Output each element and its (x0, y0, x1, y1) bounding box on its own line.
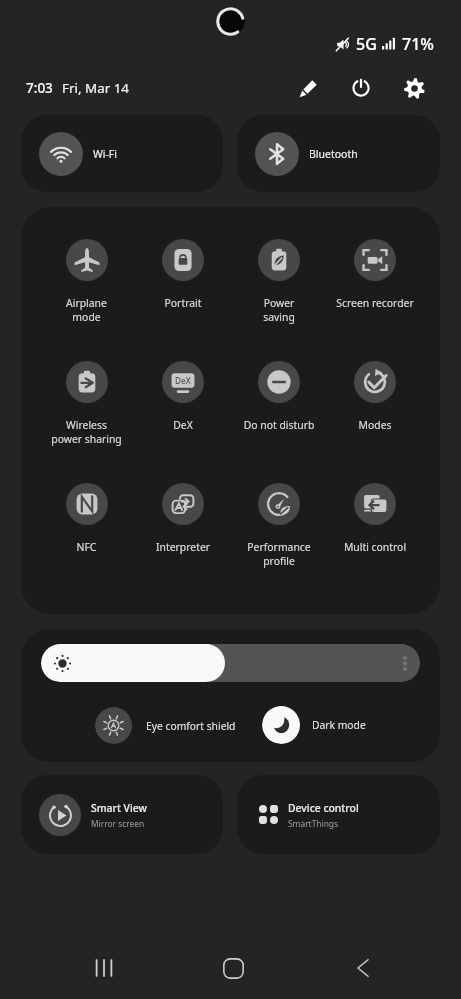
staticText: Dark mode (312, 718, 366, 732)
button[interactable]: Airplane mode (38, 239, 135, 324)
button[interactable]: Smart View (21, 775, 223, 854)
button[interactable]: Performance profile (231, 483, 327, 568)
staticText: 5G (356, 33, 377, 55)
staticText: Fri, Mar 14 (62, 79, 129, 97)
staticText: Power saving (231, 296, 327, 324)
staticText: 71% (402, 33, 434, 55)
staticText: NFC (38, 540, 135, 554)
button[interactable]: Settings (393, 67, 435, 109)
staticText: Wireless power sharing (38, 418, 135, 446)
staticText: Performance profile (231, 540, 327, 568)
staticText: 7:03 (26, 79, 53, 97)
button[interactable]: Back (298, 937, 428, 999)
staticText: Eye comfort shield (146, 719, 236, 733)
button[interactable]: Screen recorder (327, 239, 423, 310)
staticText: Multi control (327, 540, 423, 554)
button[interactable]: Multi control (327, 483, 423, 554)
staticText: SmartThings (288, 818, 339, 829)
button[interactable]: Power (340, 67, 382, 109)
button[interactable]: Wireless power sharing (38, 361, 135, 446)
staticText: DeX (135, 418, 231, 432)
button[interactable]: Brightness (41, 644, 420, 682)
staticText: Interpreter (135, 540, 231, 554)
staticText: Bluetooth (309, 147, 358, 161)
button[interactable]: Eye comfort shield (95, 707, 236, 744)
button[interactable]: Home (168, 937, 298, 999)
button[interactable]: Recent apps (39, 937, 168, 999)
button[interactable]: Do not disturb (231, 361, 327, 432)
staticText: Modes (327, 418, 423, 432)
button[interactable]: Bluetooth (237, 115, 440, 192)
staticText: Wi-Fi (93, 147, 118, 161)
button[interactable]: Portrait (135, 239, 231, 310)
button[interactable]: Edit quick settings (287, 67, 329, 109)
button[interactable]: NFC (38, 483, 135, 554)
staticText: Device control (288, 801, 359, 815)
button[interactable]: Dark mode (262, 706, 366, 744)
staticText: Smart View (91, 801, 147, 815)
button[interactable]: DeX (135, 361, 231, 432)
button[interactable]: Device control (237, 775, 440, 854)
button[interactable]: Wi-Fi (21, 115, 223, 192)
staticText: Screen recorder (327, 296, 423, 310)
button[interactable]: Modes (327, 361, 423, 432)
staticText: Mirror screen (91, 818, 145, 829)
button[interactable]: Power saving (231, 239, 327, 324)
staticText: Do not disturb (231, 418, 327, 432)
staticText: Portrait (135, 296, 231, 310)
staticText: Airplane mode (38, 296, 135, 324)
button[interactable]: Interpreter (135, 483, 231, 554)
staticText: DeX (175, 375, 191, 386)
